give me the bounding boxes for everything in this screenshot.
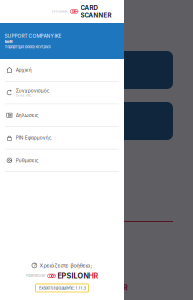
- staticText: Αρχική: [16, 67, 32, 73]
- button[interactable]: PIN Εφαρμογής: [0, 127, 124, 149]
- staticText: PIN Εφαρμογής: [16, 135, 52, 141]
- staticText: EPSILONHR: [52, 10, 68, 13]
- button[interactable]: Ρυθμίσεις: [0, 149, 124, 172]
- staticText: Χρειάζεστε βοήθεια;: [40, 262, 93, 269]
- staticText: Δηλώσεις: [16, 112, 39, 118]
- staticText: ΑΦΜ: [5, 40, 13, 44]
- staticText: SCANNER: [81, 11, 112, 19]
- staticText: CARD: [81, 4, 98, 11]
- staticText: EPSILON: [57, 272, 88, 280]
- button[interactable]: Αρχική: [0, 59, 124, 82]
- staticText: HR: [88, 272, 98, 280]
- button[interactable]: Συγχρονισμός: [0, 82, 124, 104]
- staticText: EPSILON: [87, 283, 118, 292]
- button[interactable]: ?: [0, 260, 124, 271]
- staticText: Έκδοση εφαρμογής: 1.11.3: [38, 286, 85, 290]
- button[interactable]: Δηλώσεις: [0, 104, 124, 127]
- staticText: Παράρτημα (0000) Κεντρικό: [5, 45, 51, 49]
- staticText: POWERED BY: [25, 274, 45, 278]
- staticText: SUPPORT COMPANY ΙΚΕ: [5, 33, 62, 39]
- staticText: ?: [33, 263, 35, 268]
- staticText: Ρυθμίσεις: [16, 157, 39, 163]
- staticText: POWERED BY: [65, 286, 85, 290]
- staticText: HR: [118, 283, 128, 292]
- staticText: Έγινε στις:: [16, 94, 33, 97]
- staticText: Συγχρονισμός: [16, 88, 50, 94]
